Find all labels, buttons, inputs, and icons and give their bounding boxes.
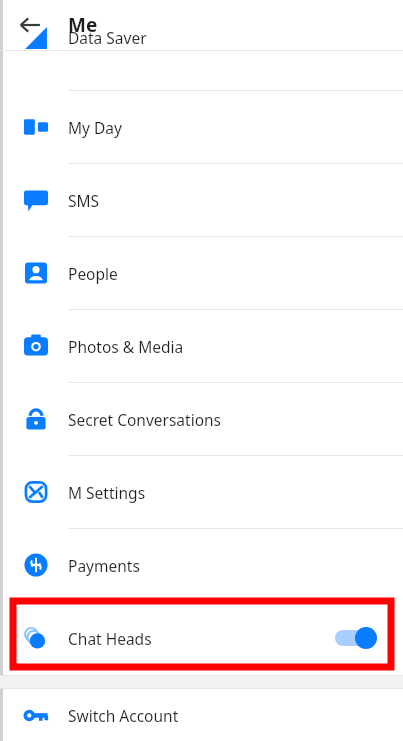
button[interactable]: People (0, 237, 403, 309)
staticText: My Day (68, 117, 122, 138)
staticText: M Settings (68, 482, 146, 503)
staticText: Payments (68, 555, 140, 576)
button[interactable]: Payments (0, 529, 403, 601)
button[interactable]: Chat Heads toggle (333, 621, 385, 655)
button[interactable]: Photos & Media (0, 310, 403, 382)
button[interactable]: Data Saver (0, 18, 403, 57)
staticText: Me (68, 12, 98, 38)
staticText: Switch Account (68, 705, 179, 726)
button[interactable]: My Day (0, 91, 403, 163)
staticText: People (68, 263, 118, 284)
staticText: Data Saver (68, 27, 147, 48)
button[interactable]: Chat Heads (0, 601, 403, 675)
button[interactable]: SMS (0, 164, 403, 236)
button[interactable]: M Settings (0, 456, 403, 528)
staticText: Secret Conversations (68, 409, 222, 430)
staticText: Chat Heads (68, 628, 152, 649)
staticText: Photos & Media (68, 336, 184, 357)
button[interactable]: Switch Account (0, 689, 403, 741)
staticText: SMS (68, 190, 100, 211)
button[interactable]: Back (8, 3, 52, 47)
button[interactable]: Secret Conversations (0, 383, 403, 455)
